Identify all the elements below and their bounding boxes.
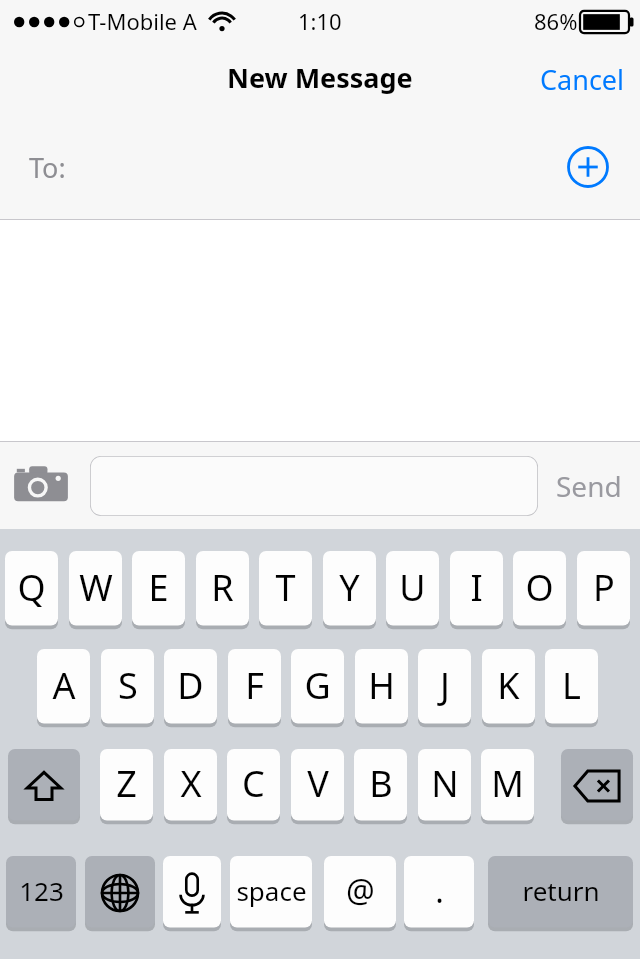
button[interactable]: Y xyxy=(323,551,376,627)
button[interactable]: O xyxy=(513,551,566,627)
button[interactable]: M xyxy=(481,749,534,822)
staticText: 86% xyxy=(534,6,578,36)
button[interactable]: W xyxy=(69,551,122,627)
button[interactable]: Add contact xyxy=(566,145,610,189)
button[interactable]: Change keyboard xyxy=(85,856,155,929)
staticText: @ xyxy=(346,869,375,913)
button[interactable]: E xyxy=(132,551,185,627)
staticText: U xyxy=(399,563,426,612)
staticText: J xyxy=(440,661,450,710)
staticText: H xyxy=(368,661,395,710)
staticText: Z xyxy=(116,759,137,808)
button[interactable]: F xyxy=(228,649,281,725)
staticText: S xyxy=(118,661,138,710)
button[interactable] xyxy=(90,456,538,516)
button[interactable]: P xyxy=(577,551,630,627)
button[interactable]: A xyxy=(37,649,90,725)
staticText: L xyxy=(562,661,581,710)
button[interactable]: I xyxy=(450,551,503,627)
button[interactable]: C xyxy=(227,749,280,822)
staticText: New Message xyxy=(227,59,413,96)
button[interactable]: U xyxy=(386,551,439,627)
staticText: Send xyxy=(556,467,622,505)
staticText: D xyxy=(177,661,204,710)
staticText: N xyxy=(431,759,459,808)
staticText: 1:10 xyxy=(298,6,342,36)
staticText: return xyxy=(522,873,600,908)
button[interactable]: L xyxy=(545,649,598,725)
staticText: I xyxy=(470,563,483,612)
button[interactable]: Cancel xyxy=(525,51,640,108)
button[interactable]: 123 xyxy=(6,856,76,929)
button[interactable]: Backspace xyxy=(561,749,633,822)
staticText: M xyxy=(491,759,524,808)
button[interactable]: R xyxy=(196,551,249,627)
button[interactable]: J xyxy=(418,649,471,725)
staticText: X xyxy=(180,759,202,808)
button[interactable]: N xyxy=(418,749,471,822)
staticText: B xyxy=(369,759,393,808)
staticText: space xyxy=(236,873,307,908)
button[interactable]: G xyxy=(291,649,344,725)
staticText: V xyxy=(307,759,329,808)
staticText: E xyxy=(148,563,169,612)
staticText: Cancel xyxy=(540,61,625,98)
button[interactable]: V xyxy=(291,749,344,822)
staticText: G xyxy=(304,661,331,710)
button[interactable]: T xyxy=(259,551,312,627)
staticText: T xyxy=(275,563,296,612)
button[interactable]: B xyxy=(354,749,407,822)
staticText: C xyxy=(242,759,265,808)
staticText: . xyxy=(435,869,444,913)
button[interactable]: Shift xyxy=(8,749,80,822)
button[interactable]: space xyxy=(230,856,312,929)
button[interactable]: S xyxy=(101,649,154,725)
button[interactable]: return xyxy=(488,856,633,929)
button[interactable]: Dictate xyxy=(163,856,221,929)
button[interactable]: D xyxy=(164,649,217,725)
staticText: K xyxy=(497,661,520,710)
button[interactable]: Send xyxy=(538,459,640,513)
staticText: T-Mobile A xyxy=(88,6,197,36)
button[interactable]: H xyxy=(355,649,408,725)
staticText: Y xyxy=(339,563,360,612)
button[interactable]: Z xyxy=(100,749,153,822)
button[interactable]: @ xyxy=(324,856,396,929)
staticText: To: xyxy=(29,149,66,186)
staticText: 123 xyxy=(19,873,64,908)
button[interactable]: K xyxy=(482,649,535,725)
staticText: Q xyxy=(17,563,46,612)
staticText: W xyxy=(79,563,113,612)
button[interactable]: Q xyxy=(5,551,58,627)
staticText: R xyxy=(211,563,234,612)
button[interactable]: Camera xyxy=(13,462,69,510)
staticText: A xyxy=(52,661,76,710)
button[interactable]: . xyxy=(404,856,474,929)
button[interactable]: X xyxy=(164,749,217,822)
button[interactable]: To: xyxy=(0,115,640,219)
staticText: F xyxy=(245,661,264,710)
staticText: O xyxy=(525,563,554,612)
staticText: P xyxy=(593,563,615,612)
